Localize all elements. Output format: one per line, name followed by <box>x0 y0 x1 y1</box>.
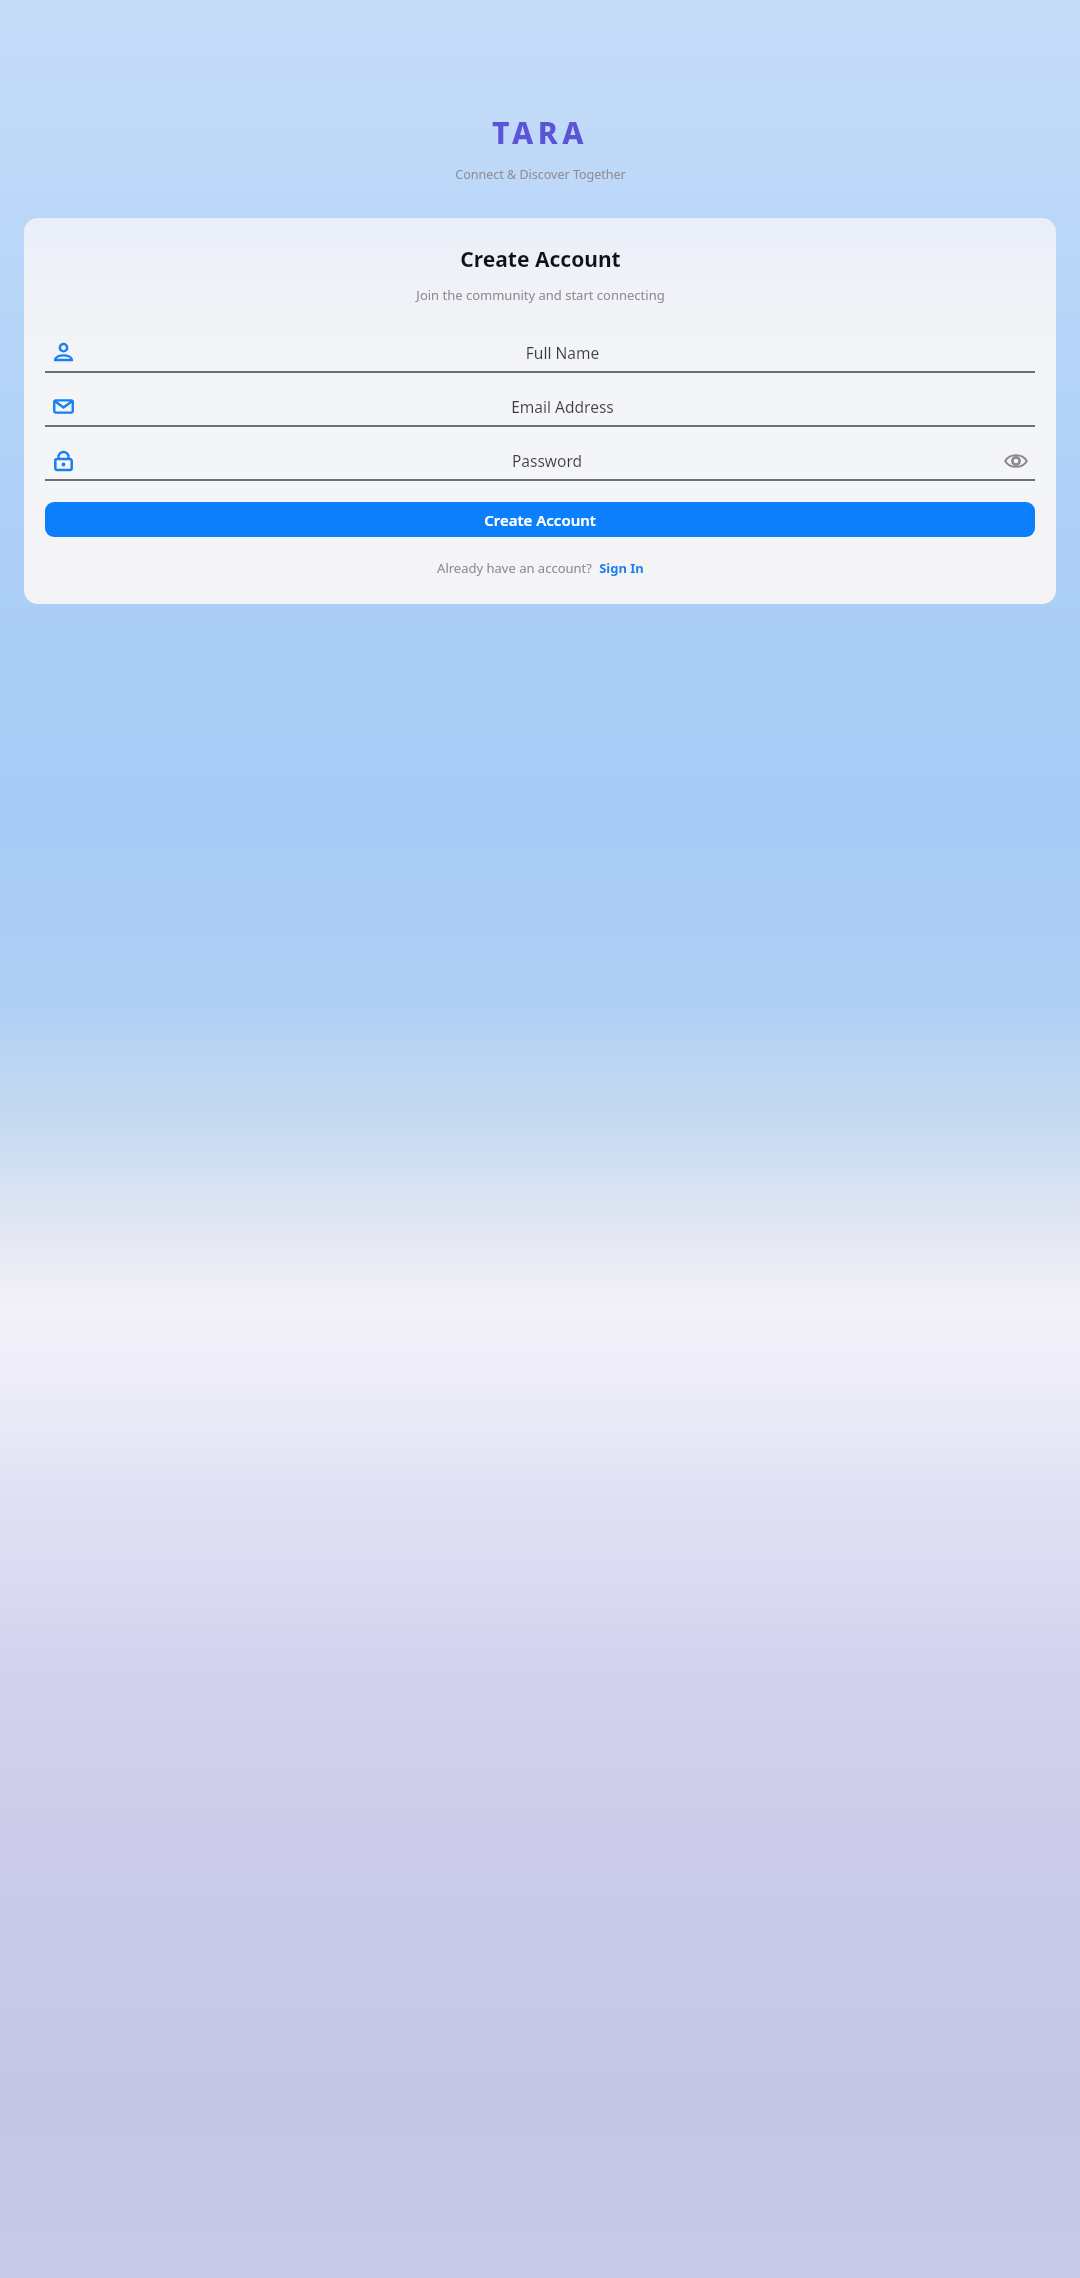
staticText: Join the community and start connecting <box>416 286 665 304</box>
staticText: Full Name <box>90 342 1035 363</box>
button[interactable]: Create Account <box>45 502 1035 537</box>
staticText: Password <box>90 450 1004 471</box>
button[interactable]: Full Name <box>45 334 1035 373</box>
staticText: Connect & Discover Together <box>455 166 626 183</box>
staticText: Email Address <box>90 396 1035 417</box>
button[interactable]: Password <box>45 442 1035 481</box>
staticText: Create Account <box>460 245 621 274</box>
button[interactable]: Show password <box>1004 449 1028 473</box>
staticText: Create Account <box>484 510 596 530</box>
staticText: TARA <box>492 112 588 153</box>
staticText: Already have an account? <box>437 559 592 577</box>
button[interactable]: Email Address <box>45 388 1035 427</box>
staticText: Sign In <box>599 559 644 577</box>
button[interactable]: Sign In <box>599 559 644 577</box>
